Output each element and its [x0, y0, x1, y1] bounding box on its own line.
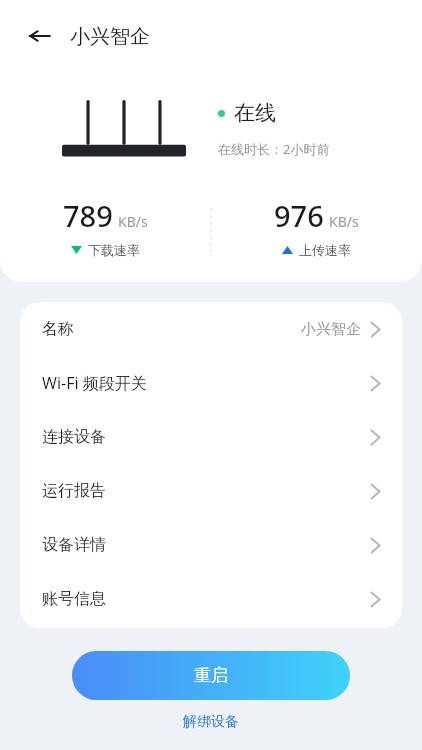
staticText: 在线 — [234, 100, 276, 126]
staticText: 976 — [274, 196, 324, 235]
button[interactable]: 名称 — [20, 302, 402, 356]
staticText: 账号信息 — [42, 589, 106, 609]
button[interactable]: Back — [20, 16, 60, 56]
staticText: 上传速率 — [299, 242, 351, 258]
staticText: 运行报告 — [42, 481, 106, 501]
button[interactable]: 账号信息 — [20, 572, 402, 626]
button[interactable]: 重启 — [72, 651, 350, 700]
button[interactable]: 解绑设备 — [0, 708, 422, 736]
staticText: 名称 — [42, 319, 74, 339]
staticText: 小兴智企 — [301, 320, 361, 339]
staticText: 重启 — [194, 665, 228, 686]
button[interactable]: 设备详情 — [20, 518, 402, 572]
staticText: 在线时长：2小时前 — [218, 140, 330, 158]
button[interactable]: 运行报告 — [20, 464, 402, 518]
staticText: KB/s — [329, 212, 359, 231]
staticText: KB/s — [118, 212, 148, 231]
staticText: 789 — [63, 196, 113, 235]
staticText: 下载速率 — [88, 242, 140, 258]
staticText: 小兴智企 — [70, 24, 150, 49]
button[interactable]: Wi-Fi 频段开关 — [20, 356, 402, 410]
staticText: 解绑设备 — [183, 713, 239, 731]
staticText: Wi-Fi 频段开关 — [42, 372, 147, 394]
button[interactable]: 连接设备 — [20, 410, 402, 464]
staticText: 设备详情 — [42, 535, 106, 555]
staticText: 连接设备 — [42, 427, 106, 447]
